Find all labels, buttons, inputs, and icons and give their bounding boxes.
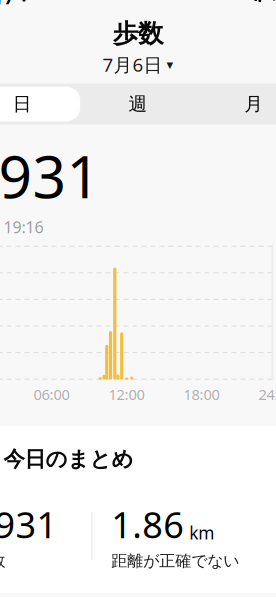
staticText: km (189, 521, 214, 544)
staticText: 21:17 (0, 0, 14, 10)
staticText: ▾ (166, 57, 173, 72)
staticText: 18:00 (183, 385, 219, 404)
staticText: 歩数 (0, 551, 5, 571)
staticText: 2931 (0, 136, 100, 214)
button[interactable]: 7月6日 (96, 50, 179, 79)
staticText: 歩数 (113, 18, 163, 49)
staticText: 7月6日 (102, 52, 162, 77)
staticText: 距離が正確でない (111, 551, 239, 571)
staticText: 日 (13, 93, 32, 115)
staticText: 月 (244, 93, 263, 115)
staticText: 2931 (0, 500, 57, 548)
staticText: 週 (128, 93, 147, 115)
button[interactable]: 日 (0, 86, 80, 121)
staticText: 1.86 (111, 500, 184, 548)
staticText: 今日のまとめ (3, 446, 133, 472)
button[interactable]: 月 (196, 86, 276, 121)
staticText: 19:16 (3, 216, 43, 238)
staticText: 06:00 (33, 385, 69, 404)
staticText: 24:00 (258, 385, 276, 404)
button[interactable]: 週 (80, 86, 196, 121)
staticText: 12:00 (108, 385, 144, 404)
